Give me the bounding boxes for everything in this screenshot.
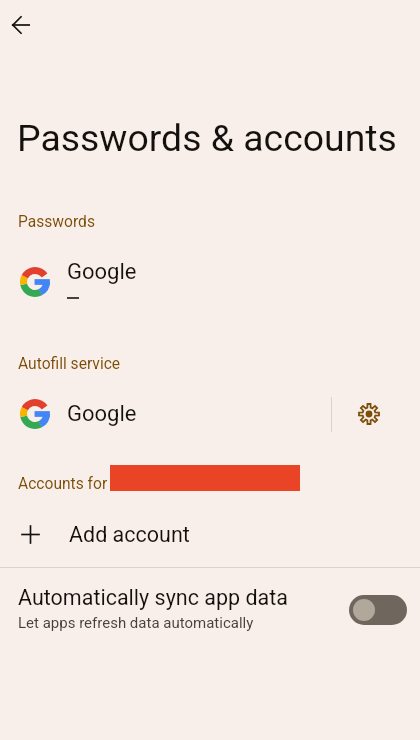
staticText: Google	[67, 259, 137, 285]
staticText: Accounts for	[18, 475, 108, 493]
button[interactable]: Automatically sync app data	[349, 595, 407, 625]
staticText: Google	[67, 401, 137, 427]
staticText: Passwords & accounts	[17, 116, 397, 160]
button[interactable]: Add account	[0, 509, 420, 559]
staticText: Automatically sync app data	[18, 585, 289, 610]
staticText: Autofill service	[18, 355, 121, 373]
staticText: Add account	[69, 522, 190, 547]
button[interactable]: Back	[0, 3, 43, 47]
button[interactable]: Google	[0, 250, 420, 314]
staticText: Passwords	[18, 213, 95, 231]
button[interactable]: Autofill settings	[332, 389, 420, 439]
button[interactable]: Automatically sync app data	[0, 567, 420, 657]
button[interactable]: Google	[0, 389, 331, 439]
staticText: Let apps refresh data automatically	[18, 614, 254, 632]
